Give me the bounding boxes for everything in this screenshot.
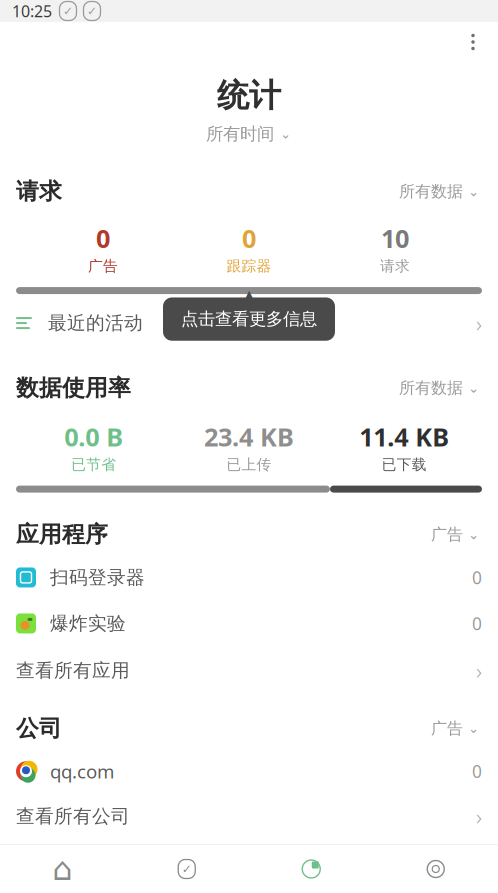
- staticText: ⌄: [468, 721, 479, 736]
- staticText: 11.4 KB: [359, 420, 449, 453]
- button[interactable]: 广告: [429, 521, 482, 548]
- staticText: 0: [472, 760, 482, 783]
- staticText: 爆炸实验: [50, 612, 126, 635]
- button[interactable]: Statistics: [249, 856, 373, 882]
- staticText: 已节省: [71, 456, 116, 474]
- staticText: 数据使用率: [16, 374, 131, 402]
- staticText: ✓: [63, 4, 73, 18]
- button[interactable]: 查看所有公司: [0, 796, 498, 836]
- staticText: qq.com: [50, 759, 114, 784]
- staticText: 0: [242, 221, 256, 255]
- button[interactable]: 扫码登录器: [0, 554, 498, 600]
- staticText: 0.0 B: [64, 420, 123, 453]
- staticText: 请求: [16, 178, 62, 205]
- button[interactable]: More options: [456, 25, 490, 59]
- staticText: ⌄: [468, 380, 479, 395]
- button[interactable]: 所有时间: [200, 118, 298, 150]
- button[interactable]: 广告: [429, 714, 482, 742]
- button[interactable]: 查看所有应用: [0, 650, 498, 690]
- staticText: 已上传: [226, 456, 271, 474]
- staticText: ⌄: [468, 527, 479, 542]
- button[interactable]: qq.com: [0, 748, 498, 794]
- staticText: ✓: [87, 4, 97, 18]
- staticText: 应用程序: [16, 521, 108, 548]
- staticText: 查看所有应用: [16, 659, 130, 682]
- staticText: 点击查看更多信息: [181, 308, 317, 330]
- staticText: 10: [381, 221, 409, 255]
- staticText: 0: [96, 221, 110, 255]
- staticText: 已下载: [382, 456, 427, 474]
- staticText: ›: [476, 308, 482, 338]
- button[interactable]: Protection: [124, 856, 249, 882]
- staticText: 广告: [431, 525, 463, 544]
- staticText: ▲: [244, 288, 253, 301]
- button[interactable]: 所有数据: [397, 374, 482, 402]
- staticText: ⌂: [52, 851, 72, 887]
- staticText: 0: [472, 566, 482, 589]
- button[interactable]: Settings: [373, 856, 498, 882]
- staticText: 0: [472, 612, 482, 635]
- button[interactable]: 最近的活动: [0, 296, 498, 350]
- staticText: ›: [476, 655, 482, 685]
- staticText: ⌄: [280, 126, 291, 141]
- staticText: 所有数据: [399, 378, 463, 398]
- staticText: 10:25: [12, 0, 52, 22]
- staticText: 请求: [380, 257, 410, 275]
- staticText: ⌄: [468, 184, 479, 199]
- staticText: ✓: [182, 862, 192, 876]
- button[interactable]: 爆炸实验: [0, 600, 498, 646]
- staticText: 最近的活动: [48, 312, 143, 334]
- staticText: 所有数据: [399, 182, 463, 201]
- staticText: 公司: [16, 714, 62, 742]
- staticText: 广告: [88, 257, 118, 275]
- staticText: 跟踪器: [226, 257, 271, 275]
- staticText: 扫码登录器: [50, 566, 145, 589]
- staticText: 所有时间: [206, 123, 274, 145]
- button[interactable]: 所有数据: [397, 178, 482, 205]
- staticText: 查看所有公司: [16, 805, 130, 828]
- button[interactable]: Home: [0, 856, 124, 882]
- staticText: 23.4 KB: [204, 420, 294, 453]
- staticText: 统计: [217, 76, 281, 115]
- staticText: 广告: [431, 718, 463, 738]
- staticText: ›: [476, 801, 482, 831]
